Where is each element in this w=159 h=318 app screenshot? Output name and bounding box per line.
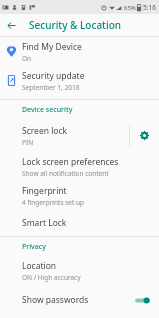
- staticText: Fingerprint: [22, 185, 67, 197]
- staticText: ON / High accuracy: [22, 273, 81, 282]
- staticText: On: [22, 54, 32, 63]
- staticText: 5:16: [143, 3, 156, 12]
- staticText: Location: [22, 260, 57, 272]
- staticText: Show passwords: [22, 294, 89, 306]
- button[interactable]: Fingerprint: [0, 181, 159, 210]
- staticText: 65%: [124, 4, 136, 12]
- staticText: Lock screen preferences: [22, 156, 119, 168]
- button[interactable]: Screen lock settings: [130, 119, 159, 152]
- button[interactable]: Lock screen preferences: [0, 152, 159, 181]
- button[interactable]: Show passwords: [0, 285, 159, 315]
- staticText: Show all notification content: [22, 169, 109, 178]
- button[interactable]: Find My Device: [0, 37, 159, 66]
- staticText: PIN: [22, 138, 34, 147]
- staticText: Screen lock: [22, 125, 68, 137]
- button[interactable]: Security update: [0, 66, 159, 95]
- staticText: Find My Device: [22, 41, 82, 53]
- staticText: Security & Location: [29, 18, 122, 32]
- staticText: Security update: [22, 70, 85, 82]
- button[interactable]: Navigate up: [0, 14, 22, 36]
- button[interactable]: Smart Lock: [0, 210, 159, 236]
- staticText: September 1, 2018: [22, 83, 80, 92]
- staticText: 4 fingerprints set up: [22, 198, 85, 207]
- button[interactable]: Screen lock: [0, 119, 129, 152]
- staticText: Smart Lock: [22, 217, 67, 229]
- button[interactable]: Location: [0, 256, 159, 285]
- staticText: Privacy: [22, 242, 46, 252]
- staticText: Device security: [22, 105, 73, 115]
